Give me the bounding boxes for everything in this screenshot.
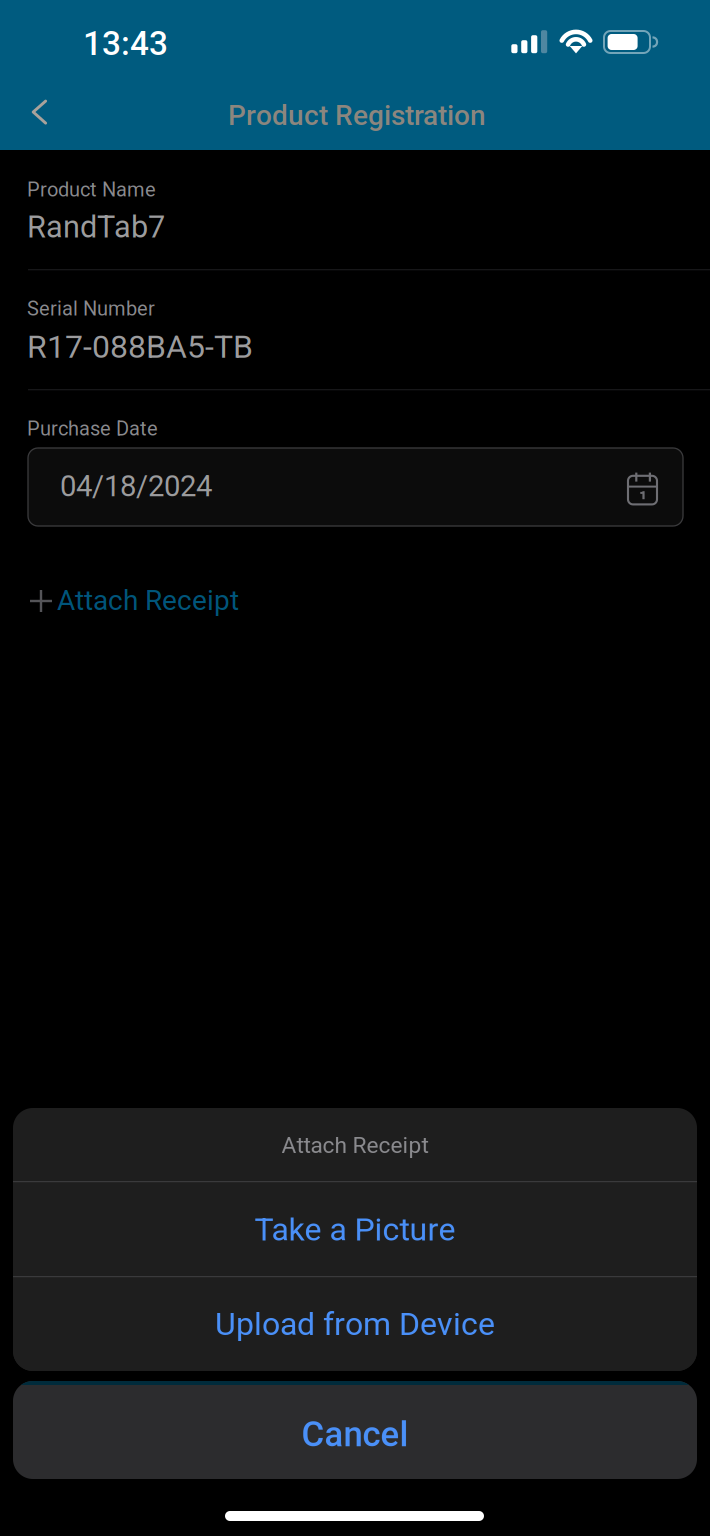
staticText: 13:43 xyxy=(83,24,168,63)
button[interactable]: Attach Receipt xyxy=(29,578,239,622)
button[interactable]: Cancel xyxy=(13,1381,697,1479)
staticText: Purchase Date xyxy=(27,417,158,440)
staticText: Cancel xyxy=(301,1414,408,1455)
staticText: Serial Number xyxy=(27,297,155,320)
staticText: RandTab7 xyxy=(27,209,165,245)
staticText: Attach Receipt xyxy=(57,584,239,617)
staticText: Take a Picture xyxy=(254,1211,455,1248)
staticText: Product Name xyxy=(27,178,156,201)
staticText: 04/18/2024 xyxy=(60,469,212,503)
button[interactable]: Back xyxy=(16,89,60,133)
staticText: Attach Receipt xyxy=(281,1132,428,1159)
button[interactable]: Upload from Device xyxy=(13,1277,697,1371)
staticText: Product Registration xyxy=(228,99,486,132)
button[interactable]: 04/18/2024 xyxy=(28,448,683,526)
button[interactable]: Take a Picture xyxy=(13,1182,697,1277)
staticText: R17-088BA5-TB xyxy=(27,328,253,365)
staticText: Upload from Device xyxy=(215,1305,495,1343)
